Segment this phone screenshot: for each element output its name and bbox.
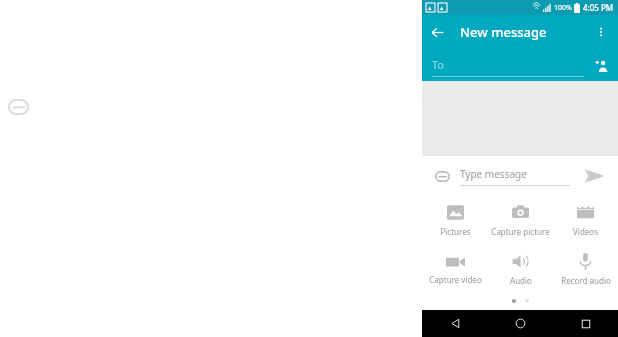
staticText: 100% [554, 3, 572, 13]
staticText: Record audio [561, 275, 611, 286]
button[interactable]: Record audio [553, 245, 618, 294]
staticText: New message [460, 23, 547, 41]
staticText: Type message [460, 167, 527, 181]
button[interactable]: Home [488, 310, 553, 337]
button[interactable]: Back [422, 310, 488, 337]
button[interactable]: Recent apps [553, 310, 618, 337]
button[interactable]: Back [422, 17, 452, 47]
staticText: Audio [510, 275, 532, 286]
button[interactable]: More options [586, 17, 616, 47]
staticText: Capture video [429, 274, 482, 285]
button[interactable]: Capture video [422, 245, 488, 294]
staticText: Videos [573, 226, 598, 237]
staticText: To [432, 57, 445, 72]
staticText: Capture picture [491, 226, 550, 237]
button[interactable]: Pictures [422, 196, 488, 245]
staticText: 4:05 PM [583, 2, 614, 13]
button[interactable]: Videos [553, 196, 618, 245]
button[interactable]: Attach [430, 164, 454, 188]
button[interactable]: Capture picture [488, 196, 553, 245]
button[interactable]: Add recipient [590, 54, 612, 76]
staticText: Pictures [440, 226, 471, 237]
button[interactable]: Audio [488, 245, 553, 294]
button[interactable]: Send [580, 161, 610, 191]
